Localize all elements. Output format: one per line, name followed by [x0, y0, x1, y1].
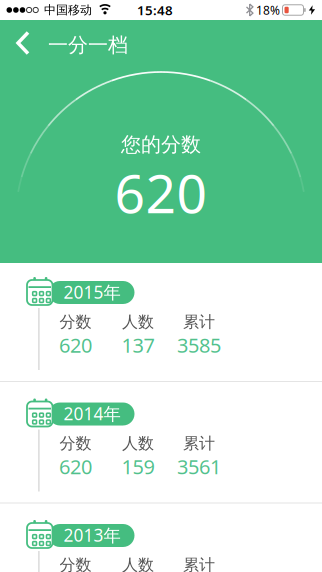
staticText: 分数	[59, 434, 91, 453]
staticText: 620	[114, 157, 207, 228]
staticText: 分数	[59, 312, 91, 332]
staticText: 中国移动	[44, 3, 92, 17]
staticText: 620	[59, 332, 92, 358]
staticText: 人数	[122, 555, 154, 572]
staticText: 2013年	[63, 523, 120, 546]
staticText: 您的分数	[121, 132, 201, 157]
staticText: 15:48	[137, 1, 173, 19]
staticText: 137	[121, 332, 154, 358]
staticText: 累计	[183, 312, 215, 332]
staticText: 18%	[256, 2, 280, 18]
staticText: 一分一档	[48, 33, 128, 57]
staticText: 3561	[177, 453, 221, 480]
staticText: 2015年	[63, 280, 120, 303]
staticText: 2014年	[63, 402, 120, 425]
staticText: 累计	[183, 555, 215, 572]
staticText: 3585	[177, 332, 221, 358]
staticText: 累计	[183, 434, 215, 453]
button[interactable]: Back	[0, 20, 40, 64]
staticText: 159	[121, 453, 154, 480]
staticText: 分数	[59, 555, 91, 572]
staticText: 620	[59, 453, 92, 480]
staticText: 人数	[122, 312, 154, 332]
staticText: 人数	[122, 434, 154, 453]
